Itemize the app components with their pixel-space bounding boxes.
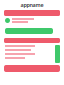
staticText: appname (20, 1, 43, 9)
